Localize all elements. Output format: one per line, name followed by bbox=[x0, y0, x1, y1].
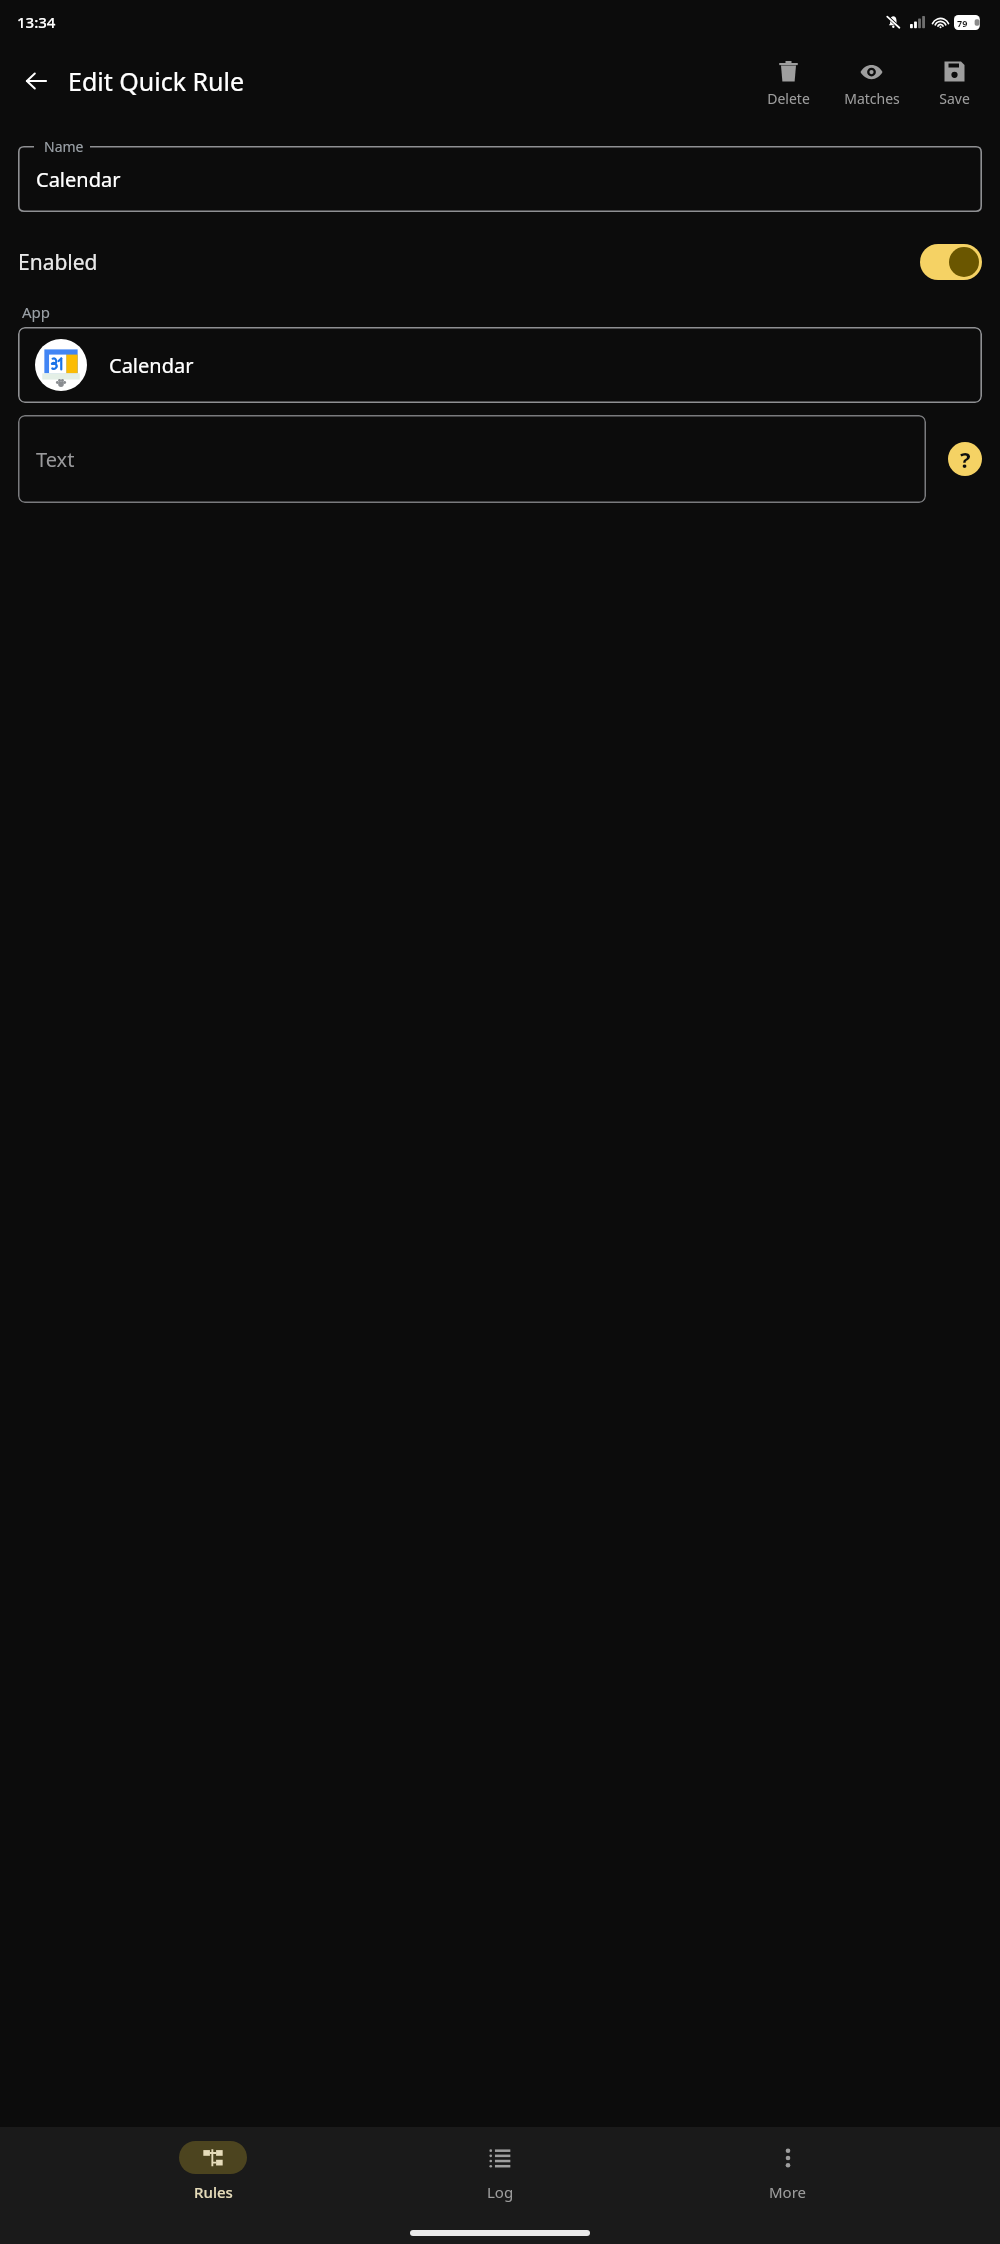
staticText: Text bbox=[36, 446, 75, 473]
button[interactable]: Log bbox=[425, 2141, 575, 2202]
button[interactable]: Help bbox=[948, 442, 982, 476]
staticText: More bbox=[769, 2182, 807, 2202]
button[interactable]: Enabled bbox=[0, 228, 1000, 296]
staticText: ? bbox=[960, 444, 971, 474]
staticText: Edit Quick Rule bbox=[68, 64, 245, 98]
staticText: Save bbox=[939, 89, 970, 108]
staticText: Calendar bbox=[36, 166, 121, 193]
button[interactable]: Rules bbox=[138, 2141, 288, 2202]
staticText: Enabled bbox=[18, 248, 98, 277]
staticText: Log bbox=[487, 2182, 514, 2202]
button[interactable]: Calendar bbox=[18, 146, 982, 212]
button[interactable]: Save bbox=[913, 55, 996, 112]
button[interactable]: Calendar bbox=[18, 327, 982, 403]
button[interactable]: Back bbox=[14, 59, 58, 103]
button[interactable]: Text bbox=[18, 415, 926, 503]
staticText: 79 bbox=[957, 17, 968, 29]
button[interactable]: More bbox=[713, 2141, 863, 2202]
button[interactable]: Matches bbox=[830, 55, 913, 112]
staticText: Calendar bbox=[109, 352, 194, 379]
staticText: App bbox=[22, 302, 51, 322]
staticText: Matches bbox=[844, 89, 900, 108]
staticText: Delete bbox=[767, 89, 810, 108]
staticText: Name bbox=[44, 137, 84, 156]
staticText: Rules bbox=[194, 2182, 233, 2202]
button[interactable]: Delete bbox=[747, 55, 830, 112]
other: Enabled toggle, on bbox=[920, 244, 982, 280]
staticText: 13:34 bbox=[17, 12, 56, 32]
